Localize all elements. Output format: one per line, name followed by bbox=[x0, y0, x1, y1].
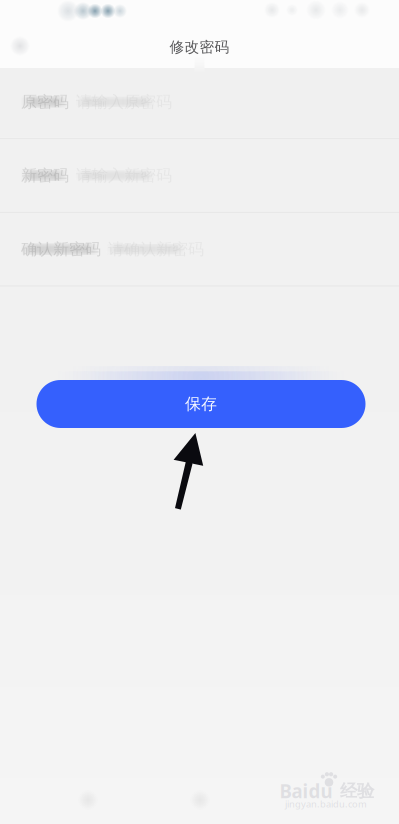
button[interactable]: 返回 bbox=[0, 26, 42, 68]
staticText: 修改密码 bbox=[169, 38, 229, 56]
staticText: 请确认新密码 bbox=[108, 239, 204, 259]
staticText: 请输入原密码 bbox=[76, 92, 172, 112]
staticText: Baidu bbox=[279, 779, 332, 803]
staticText: 经验 bbox=[340, 780, 374, 802]
staticText: 确认新密码 bbox=[21, 239, 101, 259]
staticText: 新密码 bbox=[21, 166, 69, 185]
button[interactable]: 保存 bbox=[36, 380, 365, 428]
staticText: jingyan.baidu.com bbox=[285, 798, 367, 810]
staticText: 原密码 bbox=[21, 92, 69, 112]
staticText: 保存 bbox=[185, 394, 217, 414]
staticText: 请输入新密码 bbox=[76, 166, 172, 185]
